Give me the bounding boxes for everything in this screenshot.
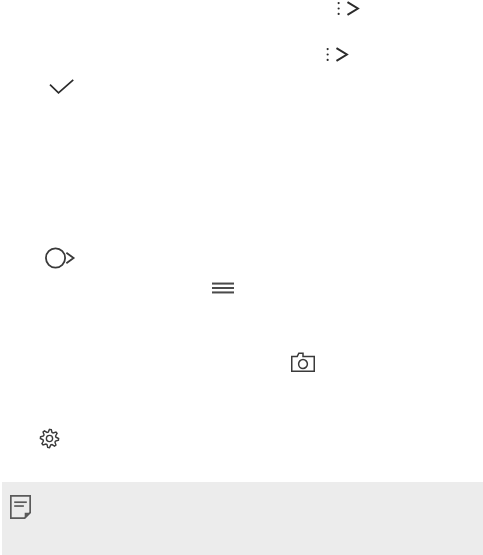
button[interactable]: More options, next <box>335 0 361 19</box>
button[interactable]: Settings <box>40 429 59 448</box>
button[interactable]: Done <box>49 79 74 94</box>
button[interactable]: Menu <box>212 282 234 294</box>
button[interactable]: More options, next <box>324 44 350 65</box>
button[interactable]: Camera <box>291 352 315 372</box>
button[interactable]: Note <box>10 495 31 519</box>
button[interactable]: Record, next <box>44 246 80 270</box>
